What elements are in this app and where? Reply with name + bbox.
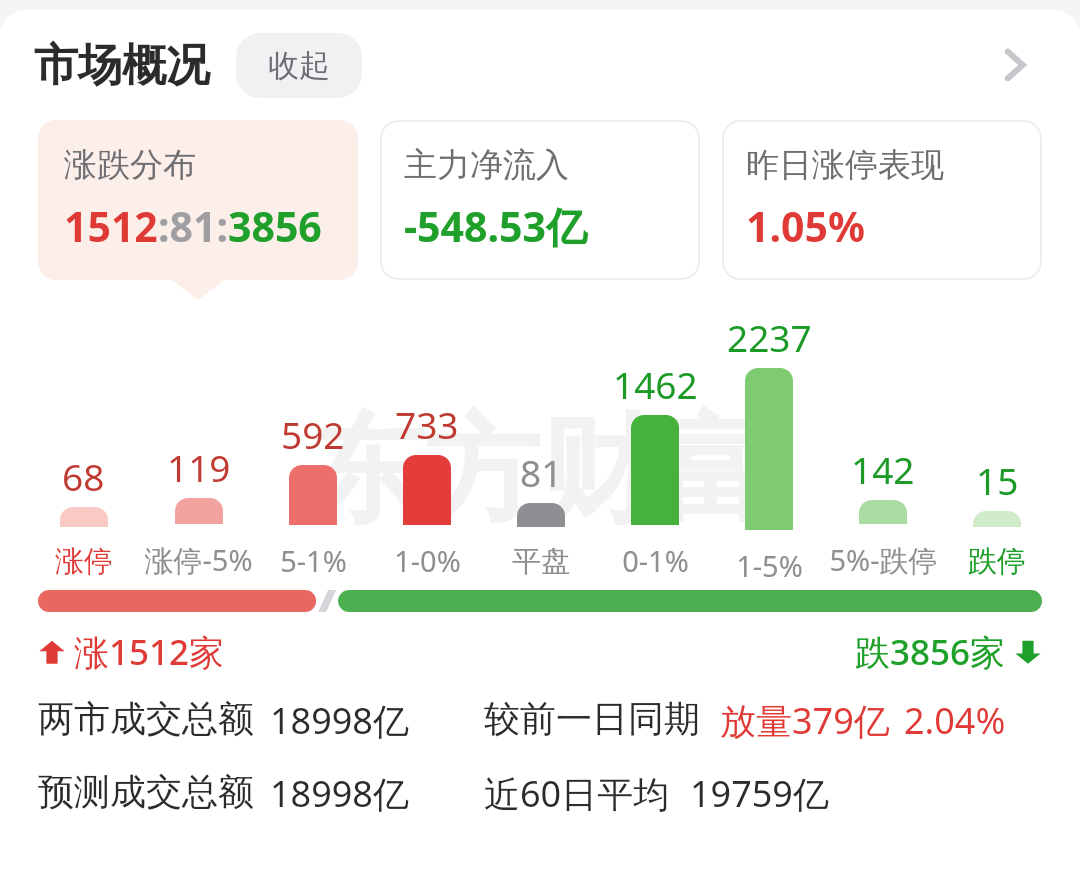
staticText: 涨跌分布 — [64, 144, 196, 186]
staticText: 昨日涨停表现 — [746, 144, 944, 186]
staticText: 1-0% — [394, 541, 461, 580]
staticText: 近60日平均 — [484, 769, 670, 818]
staticText: 市场概况 — [34, 38, 210, 93]
staticText: 平盘 — [512, 543, 570, 580]
staticText: 预测成交总额 — [38, 769, 254, 814]
staticText: 733 — [395, 399, 459, 449]
staticText: 119 — [167, 442, 231, 492]
staticText: 放量379亿 — [720, 696, 890, 745]
staticText: 5-1% — [280, 541, 347, 580]
staticText: 东方财富 — [308, 398, 772, 544]
staticText: 5%-跌停 — [829, 540, 938, 580]
staticText: 跌停 — [968, 543, 1026, 580]
staticText: 0-1% — [622, 541, 689, 580]
staticText: 1512 — [64, 198, 158, 254]
staticText: 19759亿 — [690, 769, 829, 818]
button[interactable]: 主力净流入 — [380, 120, 700, 280]
staticText: :81: — [158, 198, 228, 254]
staticText: 81 — [520, 447, 563, 497]
staticText: 15 — [976, 455, 1019, 505]
staticText: 涨1512家 — [74, 628, 225, 676]
staticText: 1.05% — [746, 198, 865, 254]
button[interactable]: 昨日涨停表现 — [722, 120, 1042, 280]
button[interactable]: 查看更多 — [982, 33, 1046, 97]
staticText: 收起 — [268, 46, 330, 85]
staticText: 18998亿 — [270, 696, 409, 745]
staticText: 68 — [62, 451, 105, 501]
staticText: 跌3856家 — [855, 628, 1006, 676]
staticText: 142 — [851, 444, 915, 494]
staticText: 592 — [281, 409, 345, 459]
staticText: 1462 — [613, 359, 698, 409]
staticText: 涨停 — [55, 543, 113, 580]
staticText: 较前一日同期 — [484, 696, 700, 741]
staticText: -548.53亿 — [404, 198, 587, 254]
staticText: 主力净流入 — [404, 144, 569, 186]
staticText: 1-5% — [736, 546, 803, 580]
staticText: 2.04% — [904, 696, 1006, 745]
button[interactable]: 涨跌分布 — [38, 120, 358, 280]
staticText: 18998亿 — [270, 769, 409, 818]
staticText: 涨停-5% — [144, 540, 253, 580]
staticText: 2237 — [727, 312, 812, 362]
button[interactable]: 收起 — [236, 33, 362, 98]
staticText: 两市成交总额 — [38, 696, 254, 741]
staticText: 3856 — [228, 198, 322, 254]
